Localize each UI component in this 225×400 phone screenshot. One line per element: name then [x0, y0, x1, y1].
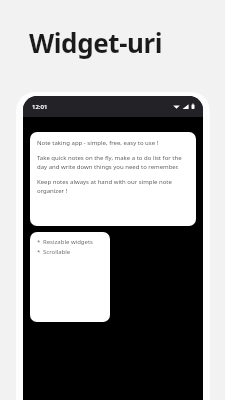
staticText: *: [37, 238, 41, 246]
button[interactable]: *: [30, 232, 110, 322]
staticText: Widget-uri: [29, 25, 163, 60]
staticText: Resizable widgets: [43, 238, 93, 246]
button[interactable]: Note taking app - simple, free, easy to …: [30, 132, 196, 226]
staticText: 12:01: [32, 103, 48, 111]
staticText: Take quick notes on the fly, make a to d…: [37, 154, 189, 171]
staticText: *: [37, 248, 41, 256]
staticText: Note taking app - simple, free, easy to …: [37, 139, 159, 147]
staticText: Scrollable: [43, 248, 71, 256]
staticText: Keep notes always at hand with our simpl…: [37, 178, 189, 195]
